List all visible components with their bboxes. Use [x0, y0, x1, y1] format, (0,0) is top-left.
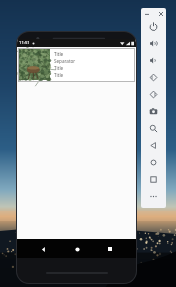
- button[interactable]: Back: [35, 241, 51, 257]
- button[interactable]: Power: [141, 18, 166, 35]
- button[interactable]: Minimize: [144, 11, 149, 16]
- button[interactable]: Zoom: [141, 120, 166, 137]
- staticText: 11:51: [19, 40, 30, 46]
- button[interactable]: Back: [141, 137, 166, 154]
- staticText: Title: [54, 51, 64, 57]
- button[interactable]: Overview: [141, 171, 166, 188]
- button[interactable]: Close: [158, 11, 163, 16]
- button[interactable]: Rotate right: [141, 86, 166, 103]
- button[interactable]: Rotate left: [141, 69, 166, 86]
- button[interactable]: More: [141, 188, 166, 205]
- staticText: Title: [54, 65, 64, 71]
- button[interactable]: Home: [141, 154, 166, 171]
- button[interactable]: Home: [69, 241, 85, 257]
- button[interactable]: Volume down: [141, 52, 166, 69]
- staticText: Separator: [54, 58, 76, 64]
- button[interactable]: Take screenshot: [141, 103, 166, 120]
- button[interactable]: Title: [18, 48, 135, 82]
- button[interactable]: Recents: [102, 241, 118, 257]
- staticText: Title: [54, 72, 64, 78]
- button[interactable]: Volume up: [141, 35, 166, 52]
